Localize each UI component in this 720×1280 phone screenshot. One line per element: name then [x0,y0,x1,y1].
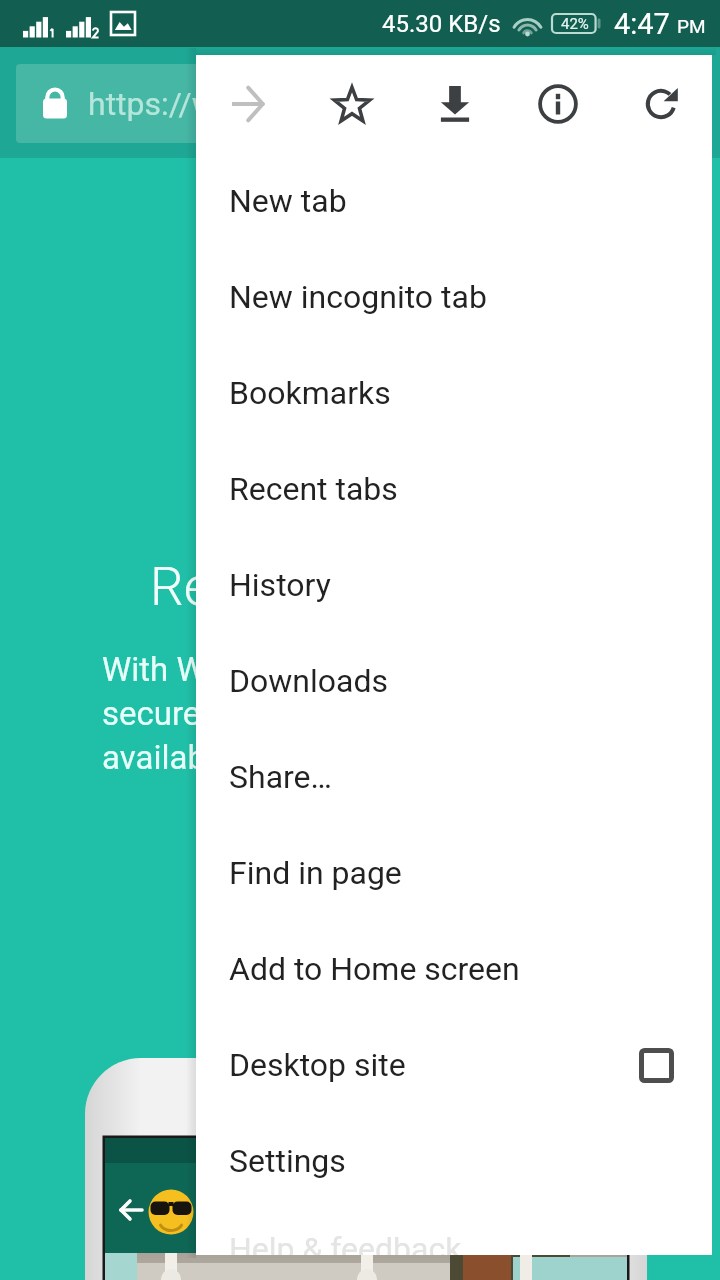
button[interactable]: https://www.google.com [16,64,704,143]
staticText: 42% [561,15,589,33]
button[interactable]: Find in page [196,825,712,921]
staticText: Share… [229,758,332,796]
button[interactable]: New tab [196,153,712,249]
staticText: History [229,566,331,604]
button[interactable]: Bookmarks [196,345,712,441]
button[interactable]: Page info [506,55,609,153]
button[interactable]: Reload [609,55,712,153]
button[interactable]: Downloads [196,633,712,729]
button[interactable]: Bookmark [300,55,403,153]
staticText: Downloads [229,662,388,700]
staticText: New incognito tab [229,278,487,316]
button[interactable]: Share… [196,729,712,825]
button[interactable]: History [196,537,712,633]
staticText: Add to Home screen [229,950,520,988]
staticText: Desktop site [229,1046,406,1084]
button[interactable]: New incognito tab [196,249,712,345]
button[interactable]: Help & feedback [196,1230,712,1255]
staticText: New tab [229,182,347,220]
staticText: Bookmarks [229,374,391,412]
button[interactable]: Add to Home screen [196,921,712,1017]
button[interactable]: Recent tabs [196,441,712,537]
button[interactable]: Forward [196,55,300,153]
button[interactable]: Desktop site checkbox [632,1041,680,1089]
staticText: Recent tabs [229,470,398,508]
staticText: Settings [229,1142,346,1180]
staticText: Help & feedback [229,1230,462,1255]
button[interactable]: Settings [196,1113,712,1209]
staticText: 45.30 KB/s [382,10,501,38]
staticText: With Wi-Fi or mobile data, secure browsi… [102,650,476,777]
staticText: 4:47 [614,7,670,41]
button[interactable]: Desktop site [196,1017,712,1113]
staticText: Reach further [150,556,466,618]
staticText: PM [677,15,706,37]
button[interactable]: Download page [403,55,506,153]
staticText: https://www.google.com [88,85,440,123]
staticText: Find in page [229,854,402,892]
